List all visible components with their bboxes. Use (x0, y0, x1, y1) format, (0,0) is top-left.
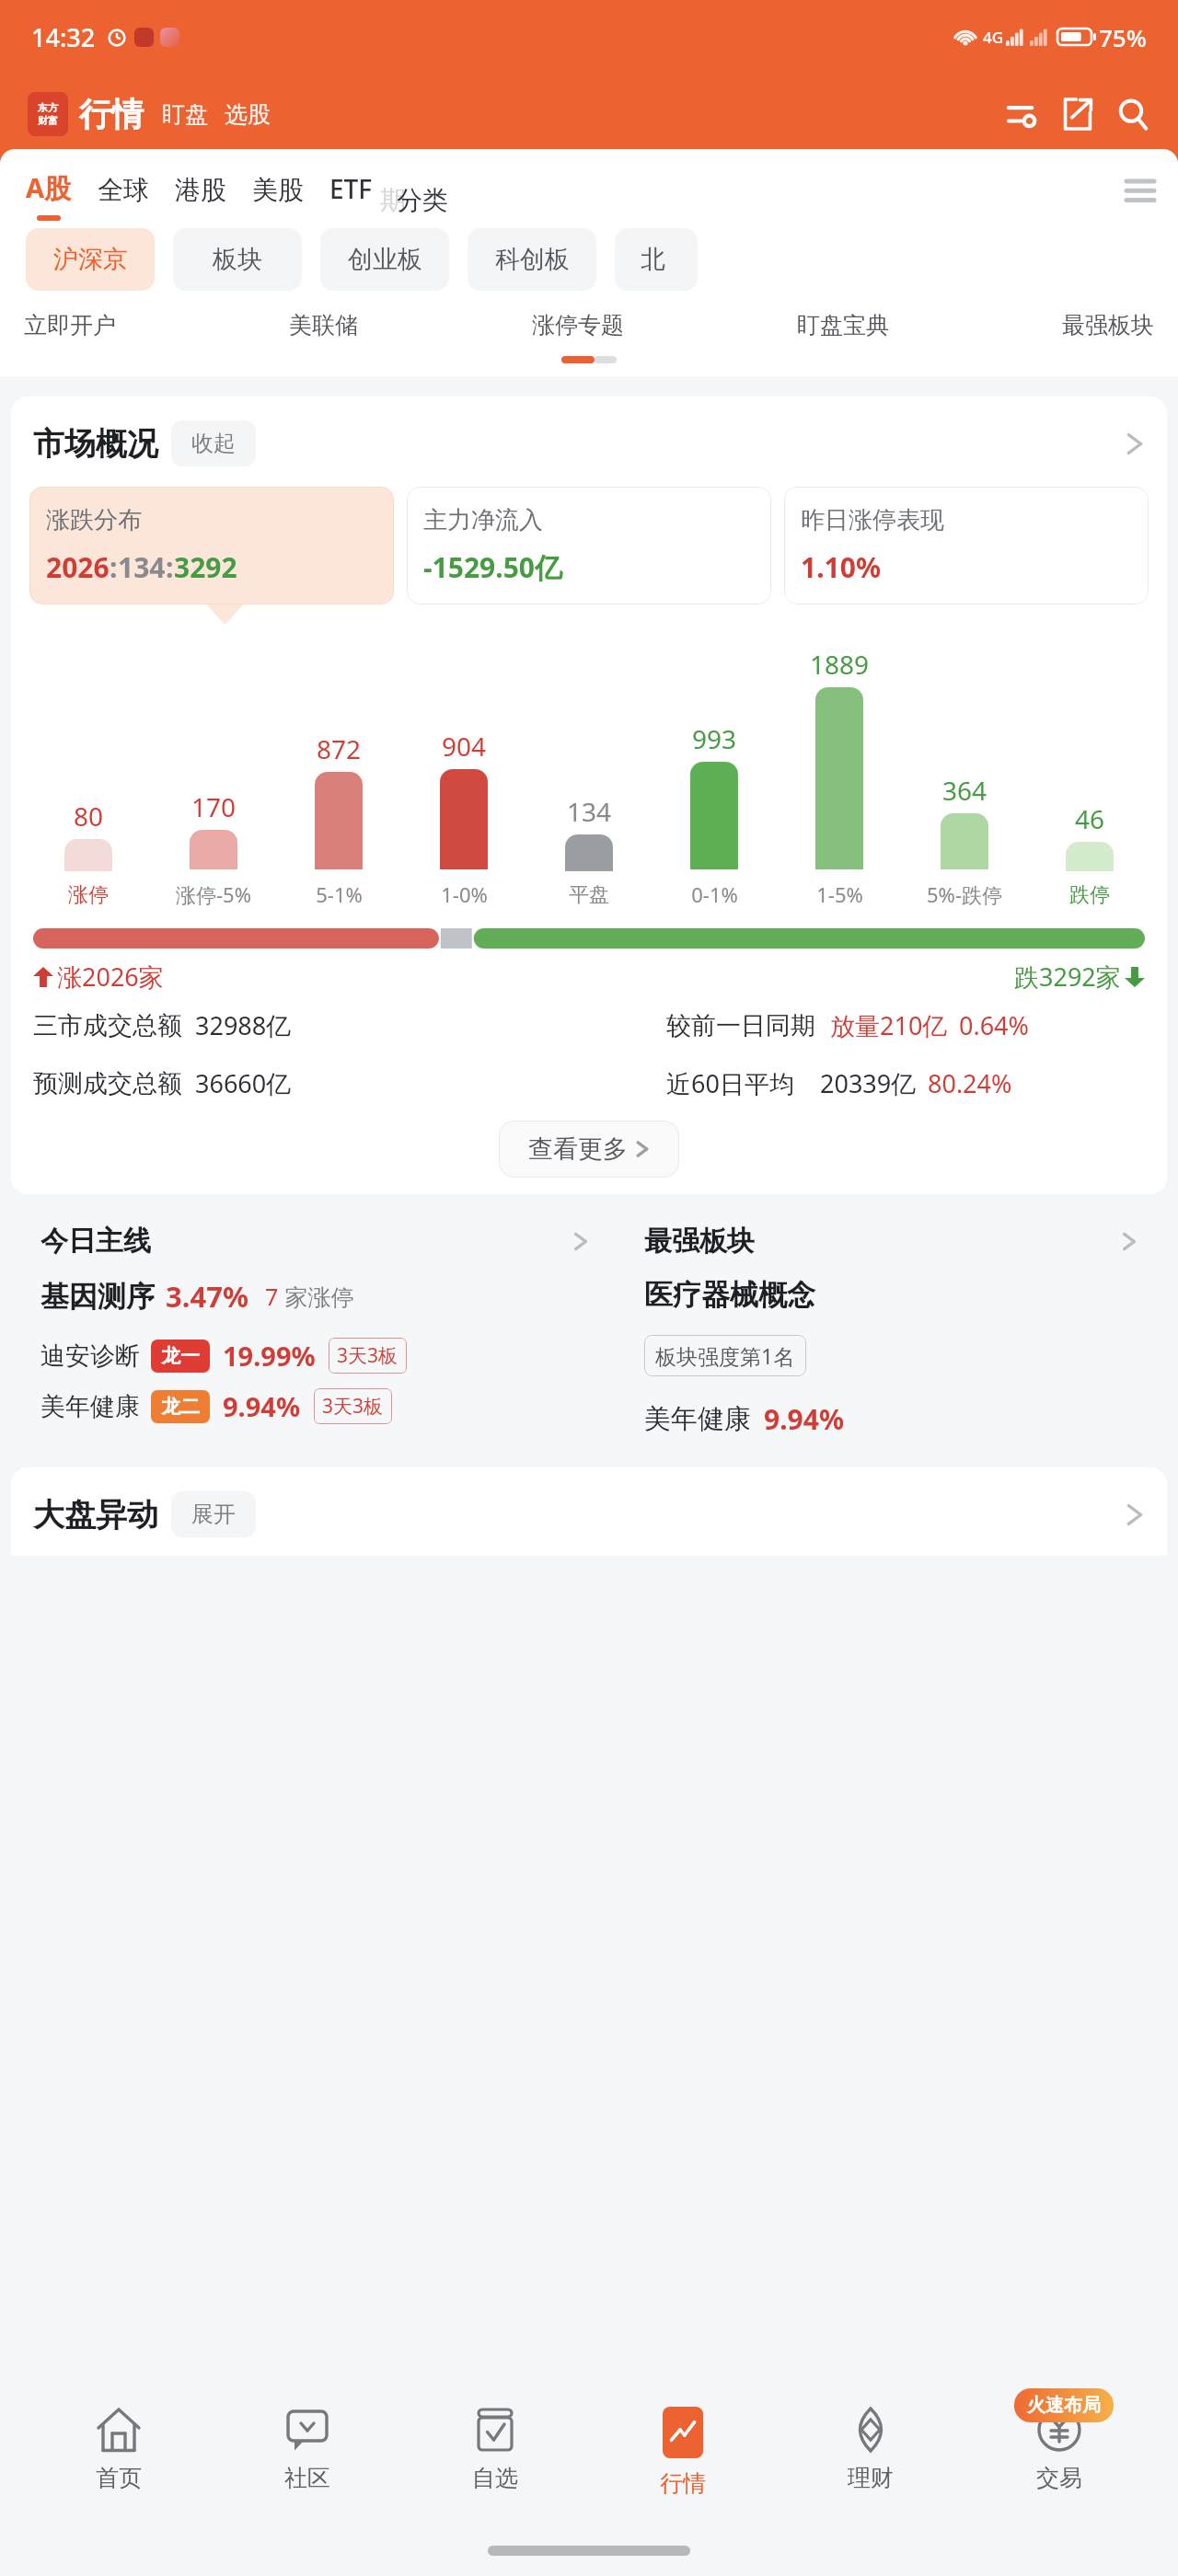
button[interactable]: 首页 (50, 2403, 188, 2496)
staticText: 涨停-5% (176, 880, 251, 908)
staticText: 1889 (810, 647, 870, 682)
staticText: 最强板块 (1062, 311, 1154, 339)
staticText: 全球 (98, 174, 149, 206)
button[interactable]: 最强板块 (1062, 305, 1154, 345)
staticText: 904 (442, 729, 487, 764)
button[interactable]: 盯盘宝典 (797, 305, 889, 345)
button[interactable]: 创业板 (320, 228, 449, 291)
staticText: 美股 (252, 174, 304, 206)
staticText: 最强板块 (644, 1224, 755, 1259)
staticText: 涨跌分布 (46, 505, 142, 535)
staticText: 东方 (38, 101, 58, 114)
staticText: 80.24% (928, 1066, 1012, 1100)
button[interactable]: 涨跌分布 (29, 487, 394, 604)
staticText: 3天3板 (322, 1393, 384, 1420)
staticText: 龙一 (161, 1344, 200, 1368)
staticText: 3.47% (166, 1277, 248, 1316)
button[interactable]: 科创板 (468, 228, 596, 291)
button[interactable]: 沪深京 (26, 228, 155, 291)
staticText: 大盘异动 (33, 1495, 158, 1535)
staticText: 2026 (46, 548, 110, 586)
staticText: 期 (380, 184, 406, 216)
staticText: 首页 (96, 2464, 142, 2492)
staticText: 1-0% (441, 880, 488, 908)
staticText: 3天3板 (337, 1342, 398, 1369)
staticText: : (166, 548, 174, 586)
staticText: 迪安诊断 (40, 1340, 140, 1372)
staticText: 20339亿 (820, 1066, 917, 1100)
staticText: 80 (74, 799, 104, 834)
button[interactable]: 港股 (175, 174, 226, 221)
staticText: 涨停 (68, 882, 109, 908)
staticText: 36660亿 (195, 1066, 292, 1100)
staticText: 170 (191, 789, 237, 824)
staticText: 涨停专题 (532, 311, 624, 339)
staticText: 基因测序 (40, 1279, 155, 1315)
staticText: 5%-跌停 (927, 880, 1002, 908)
button[interactable]: Search (1112, 93, 1154, 135)
staticText: 龙二 (161, 1395, 200, 1419)
staticText: 查看更多 (528, 1133, 628, 1165)
staticText: 沪深京 (53, 244, 128, 275)
button[interactable]: 选股 (225, 100, 271, 129)
button[interactable]: 行情 (79, 94, 144, 134)
button[interactable]: 交易 (990, 2403, 1128, 2496)
staticText: 75% (1099, 21, 1147, 53)
button[interactable]: 市场概况 (33, 420, 1145, 466)
button[interactable]: Share (1057, 93, 1099, 135)
staticText: 跌3292家 (1014, 960, 1121, 994)
button[interactable]: 涨停专题 (532, 305, 624, 345)
staticText: 港股 (175, 174, 226, 206)
button[interactable]: 盯盘 (162, 100, 208, 129)
staticText: 板块强度第1名 (655, 1341, 795, 1370)
staticText: 行情 (660, 2469, 706, 2498)
staticText: 0.64% (959, 1008, 1030, 1042)
button[interactable]: 主力净流入 (407, 487, 771, 604)
staticText: -1529.50亿 (423, 548, 562, 586)
staticText: 主力净流入 (423, 505, 543, 535)
staticText: A股 (26, 169, 72, 206)
button[interactable]: 立即开户 (24, 305, 116, 345)
button[interactable]: 查看更多 (499, 1121, 679, 1178)
button[interactable]: ETF (329, 171, 373, 221)
staticText: 创业板 (348, 244, 422, 275)
button[interactable]: 北 (615, 228, 698, 291)
button[interactable]: 昨日涨停表现 (784, 487, 1149, 604)
button[interactable]: 大盘异动 (33, 1491, 1145, 1537)
staticText: 9.94% (764, 1400, 844, 1438)
staticText: 分类 (397, 184, 448, 216)
staticText: 14:32 (31, 20, 96, 54)
staticText: 北 (641, 244, 665, 275)
staticText: 市场概况 (33, 424, 158, 464)
staticText: 美联储 (289, 311, 358, 339)
staticText: 自选 (472, 2464, 518, 2492)
staticText: 收起 (191, 430, 236, 457)
button[interactable]: A股 (26, 169, 72, 221)
button[interactable]: 最强板块 (624, 1203, 1158, 1458)
button[interactable]: More tabs (1119, 178, 1161, 221)
staticText: 0-1% (691, 880, 738, 908)
button[interactable]: 今日主线 (20, 1203, 609, 1444)
button[interactable]: 行情 (614, 2403, 752, 2501)
button[interactable]: 板块 (173, 228, 302, 291)
staticText: 4G (983, 27, 1004, 48)
staticText: 美年健康 (40, 1391, 140, 1422)
staticText: 放量210亿 (830, 1008, 948, 1042)
button[interactable]: 美联储 (289, 305, 358, 345)
button[interactable]: 全球 (98, 174, 149, 221)
staticText: 872 (317, 731, 362, 766)
button[interactable]: 社区 (238, 2403, 376, 2496)
button[interactable]: 理财 (802, 2403, 940, 2496)
staticText: 理财 (848, 2464, 894, 2492)
button[interactable]: 美股 (252, 174, 304, 221)
staticText: 1-5% (816, 880, 863, 908)
staticText: 9.94% (223, 1388, 301, 1424)
button[interactable]: Settings (1001, 93, 1044, 135)
staticText: 19.99% (223, 1338, 316, 1374)
button[interactable]: 自选 (426, 2403, 564, 2496)
staticText: 涨2026家 (57, 960, 164, 994)
staticText: 7 (265, 1281, 279, 1312)
button[interactable]: 期 (380, 189, 457, 221)
staticText: 较前一日同期 (666, 1010, 815, 1041)
staticText: ETF (329, 171, 373, 206)
